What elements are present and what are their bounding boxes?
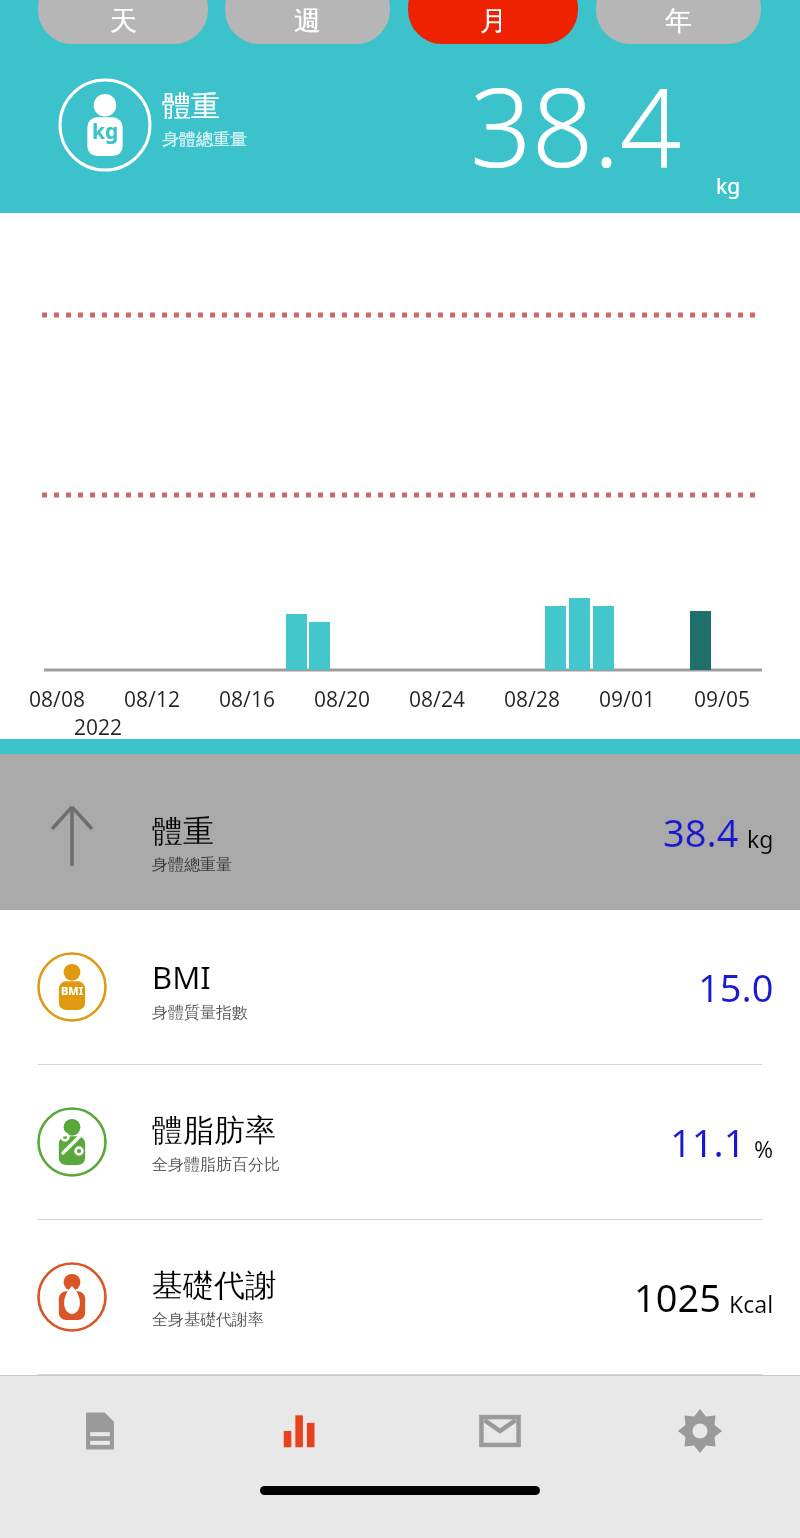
staticText: 體重 <box>152 812 214 851</box>
staticText: 全身基礎代謝率 <box>152 1310 264 1330</box>
staticText: 09/01 <box>588 685 666 714</box>
staticText: 11.1 <box>670 1116 746 1168</box>
button[interactable]: 週 <box>225 0 390 44</box>
button[interactable]: 體重 <box>0 754 800 910</box>
staticText: 08/16 <box>208 685 286 714</box>
staticText: 38.4 <box>663 806 739 858</box>
staticText: 體重 <box>162 88 220 125</box>
staticText: kg <box>92 117 119 146</box>
staticText: BMI <box>152 956 211 998</box>
button[interactable]: 基礎代謝 <box>0 1220 800 1374</box>
button[interactable]: BMI <box>0 910 800 1064</box>
staticText: 1025 <box>634 1271 721 1323</box>
button[interactable]: Records <box>0 1376 200 1486</box>
staticText: 38.4 <box>470 52 682 199</box>
staticText: 身體總重量 <box>162 129 247 150</box>
staticText: 08/20 <box>303 685 381 714</box>
staticText: 15.0 <box>698 961 774 1013</box>
staticText: 08/12 <box>113 685 191 714</box>
staticText: 2022 <box>74 713 123 742</box>
staticText: % <box>754 1133 774 1164</box>
staticText: 09/05 <box>683 685 761 714</box>
button[interactable]: 天 <box>38 0 208 44</box>
staticText: 年 <box>665 4 692 38</box>
staticText: 身體總重量 <box>152 855 232 875</box>
staticText: 08/08 <box>18 685 96 714</box>
button[interactable]: 體脂肪率 <box>0 1065 800 1219</box>
staticText: 08/28 <box>493 685 571 714</box>
staticText: kg <box>716 172 741 201</box>
staticText: 月 <box>480 4 507 38</box>
button[interactable]: Settings <box>600 1376 800 1486</box>
staticText: 體脂肪率 <box>152 1111 276 1150</box>
staticText: kg <box>747 823 774 854</box>
staticText: 08/24 <box>398 685 476 714</box>
staticText: 全身體脂肪百分比 <box>152 1155 280 1175</box>
button[interactable]: 月 <box>408 0 578 44</box>
staticText: Kcal <box>729 1288 774 1319</box>
staticText: BMI <box>61 983 83 998</box>
staticText: 身體質量指數 <box>152 1003 248 1023</box>
staticText: 週 <box>294 4 321 38</box>
staticText: 天 <box>110 4 137 38</box>
button[interactable]: Messages <box>400 1376 600 1486</box>
staticText: 基礎代謝 <box>152 1266 276 1305</box>
button[interactable]: Charts <box>200 1376 400 1486</box>
button[interactable]: 年 <box>596 0 761 44</box>
